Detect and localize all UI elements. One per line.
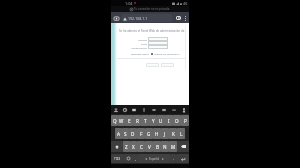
button[interactable]: J xyxy=(161,128,169,139)
button[interactable]: ?123 xyxy=(111,154,124,163)
button[interactable]: Cancelar xyxy=(161,63,174,67)
staticText: Confirmación xyxy=(131,46,147,49)
button[interactable]: W xyxy=(118,115,125,126)
button[interactable]: Backspace xyxy=(177,141,189,152)
button[interactable]: A xyxy=(115,128,122,139)
button[interactable]: Space xyxy=(138,154,170,163)
staticText: X xyxy=(132,144,135,150)
staticText: K xyxy=(172,131,175,137)
button[interactable]: X xyxy=(130,141,137,152)
button[interactable]: Period xyxy=(170,154,176,163)
button[interactable]: H xyxy=(153,128,161,139)
staticText: A xyxy=(117,131,120,137)
button[interactable]: O xyxy=(173,115,181,126)
staticText: C xyxy=(140,144,143,150)
button[interactable]: Microphone xyxy=(139,105,149,114)
button[interactable]: Z xyxy=(123,141,130,152)
button[interactable]: N xyxy=(161,141,169,152)
staticText: 1:04 xyxy=(125,1,133,6)
staticText: Acepto los términos y condiciones de uso xyxy=(154,52,186,55)
button[interactable]: L xyxy=(177,128,185,139)
button[interactable]: M xyxy=(169,141,177,152)
staticText: , xyxy=(135,156,136,161)
button[interactable]: K xyxy=(169,128,177,139)
button[interactable]: T xyxy=(141,115,149,126)
button[interactable]: D xyxy=(129,128,137,139)
button[interactable]: R xyxy=(133,115,141,126)
staticText: Y xyxy=(152,118,155,124)
staticText: Cancelar xyxy=(163,64,173,67)
button[interactable] xyxy=(148,37,168,41)
staticText: ?123 xyxy=(114,157,121,161)
button[interactable]: B xyxy=(153,141,161,152)
staticText: Q xyxy=(113,118,117,124)
staticText: L xyxy=(180,131,183,137)
button[interactable] xyxy=(148,41,168,45)
staticText: 6 xyxy=(178,16,180,20)
button[interactable]: GIF xyxy=(129,105,139,114)
staticText: O xyxy=(175,118,179,124)
button[interactable]: Sticker xyxy=(120,105,129,114)
staticText: H xyxy=(155,131,159,137)
staticText: Usuario xyxy=(137,38,147,41)
button[interactable]: Entrar xyxy=(146,63,159,67)
staticText: P xyxy=(184,118,187,124)
button[interactable]: Shift xyxy=(111,141,123,152)
button[interactable]: Clipboard xyxy=(159,105,169,114)
button[interactable]: G xyxy=(145,128,153,139)
button[interactable]: I xyxy=(165,115,173,126)
staticText: V xyxy=(148,144,151,150)
staticText: G xyxy=(147,131,151,137)
button[interactable]: P xyxy=(181,115,189,126)
staticText: . xyxy=(173,156,174,161)
staticText: F xyxy=(140,131,143,137)
staticText: S xyxy=(124,131,127,137)
staticText: W xyxy=(119,118,124,124)
staticText: Tu conexión no es privada xyxy=(134,7,170,11)
button[interactable]: More options xyxy=(182,15,188,21)
staticText: D xyxy=(131,131,135,137)
button[interactable]: Enter xyxy=(176,154,189,163)
staticText: N xyxy=(163,144,167,150)
staticText: Se ha abierto el Panel Web de administra… xyxy=(119,29,186,33)
staticText: Z xyxy=(125,144,128,150)
button[interactable]: Translate xyxy=(111,105,120,114)
button[interactable]: U xyxy=(157,115,165,126)
button[interactable]: Emoji xyxy=(124,154,132,163)
staticText: Español xyxy=(149,157,160,161)
staticText: I xyxy=(168,118,170,124)
button[interactable]: Q xyxy=(111,115,118,126)
staticText: U xyxy=(159,118,163,124)
staticText: 192.168.1.1 xyxy=(128,16,148,21)
staticText: Entrar xyxy=(149,64,156,67)
staticText: B xyxy=(156,144,159,150)
button[interactable]: Settings xyxy=(149,105,159,114)
staticText: 46 xyxy=(183,1,188,6)
button[interactable]: Voice xyxy=(179,105,189,114)
button[interactable]: 192.168.1.1 xyxy=(121,14,173,22)
staticText: J xyxy=(164,131,166,137)
staticText: R xyxy=(136,118,139,124)
staticText: M xyxy=(171,144,176,150)
staticText: E xyxy=(128,118,131,124)
staticText: Recordar datos xyxy=(131,52,149,55)
button[interactable]: Y xyxy=(149,115,157,126)
button[interactable]: F xyxy=(137,128,145,139)
button[interactable]: Comma xyxy=(132,154,138,163)
staticText: T xyxy=(144,118,147,124)
button[interactable]: S xyxy=(122,128,129,139)
button[interactable]: Tabs xyxy=(174,14,182,22)
button[interactable]: V xyxy=(145,141,153,152)
button[interactable]: Theme xyxy=(169,105,179,114)
button[interactable]: E xyxy=(125,115,133,126)
button[interactable]: Home xyxy=(112,14,120,22)
button[interactable]: C xyxy=(137,141,145,152)
button[interactable] xyxy=(148,45,168,49)
staticText: Clave xyxy=(140,42,147,45)
